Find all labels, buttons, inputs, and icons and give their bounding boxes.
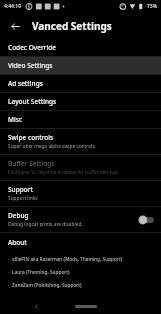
staticText: Debug: [8, 211, 29, 220]
staticText: Vanced Settings: [32, 19, 112, 33]
button[interactable]: Home: [73, 301, 99, 311]
staticText: Support: [8, 185, 33, 194]
button[interactable]: Video Settings: [0, 57, 161, 74]
staticText: About: [8, 238, 27, 247]
button[interactable]: Debug: [0, 207, 161, 232]
button[interactable]: ·: [0, 279, 161, 292]
staticText: Layout Settings: [8, 97, 57, 106]
staticText: ·: [8, 269, 10, 276]
button[interactable]: Buffer Settings: [0, 155, 161, 180]
button[interactable]: Back: [30, 300, 42, 312]
staticText: 4:44:19: [4, 3, 22, 10]
staticText: Buffer Settings: [8, 159, 55, 168]
button[interactable]: Codec Override: [0, 39, 161, 56]
staticText: xfileFIN aka Razerman (Mods, Theming, Su…: [12, 256, 123, 263]
button[interactable]: Layout Settings: [0, 93, 161, 110]
button[interactable]: Misc: [0, 111, 161, 128]
staticText: ExoPlayer V2 must be enabled for buffer …: [8, 169, 120, 176]
staticText: ·: [8, 256, 10, 263]
staticText: Debug logcat prints are disabled.: [8, 221, 83, 228]
button[interactable]: About: [0, 233, 161, 251]
button[interactable]: Back: [6, 17, 24, 35]
button[interactable]: Swipe controls: [0, 129, 161, 154]
staticText: Misc: [8, 115, 23, 124]
button[interactable]: [137, 215, 155, 225]
staticText: ·: [8, 282, 10, 289]
staticText: Swipe controls: [8, 133, 54, 142]
button[interactable]: ·: [0, 266, 161, 279]
button[interactable]: Support: [0, 181, 161, 206]
staticText: Support links: [8, 195, 38, 202]
staticText: Ad settings: [8, 79, 43, 88]
button[interactable]: Ad settings: [0, 75, 161, 92]
staticText: Video Settings: [8, 61, 53, 70]
button[interactable]: ·: [0, 253, 161, 266]
staticText: Codec Override: [8, 43, 57, 52]
staticText: 73%: [147, 3, 157, 10]
staticText: ZaneZam (Publishing, Support): [12, 282, 82, 289]
staticText: Super uber mega alpha swipe controls.: [8, 143, 96, 150]
staticText: Laura (Theming, Support): [12, 269, 70, 276]
